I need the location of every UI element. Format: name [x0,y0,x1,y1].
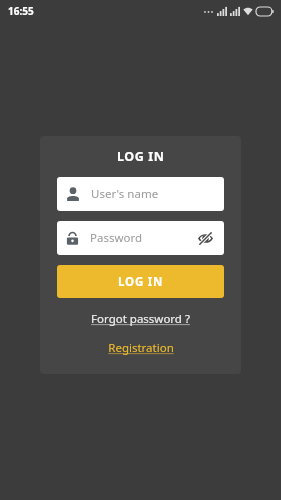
button[interactable]: Password [57,221,224,255]
staticText: User's name [91,186,159,202]
staticText: 16:55 [8,4,34,18]
button[interactable]: LOG IN [57,265,224,298]
button[interactable]: Show password [195,228,215,248]
staticText: Registration [108,340,174,356]
button[interactable]: User's name [57,177,224,211]
staticText: LOG IN [117,148,165,165]
staticText: LOG IN [118,274,164,290]
staticText: Password [90,230,195,246]
staticText: Forgot password ? [91,311,190,327]
button[interactable]: Forgot password ? [87,309,194,329]
button[interactable]: Registration [104,338,178,358]
